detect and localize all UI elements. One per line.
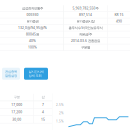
button[interactable]: 관심종목 알림설정 <box>2 68 20 80</box>
staticText: 80045원 <box>26 32 39 36</box>
staticText: 30,00 <box>12 117 21 122</box>
staticText: 4 <box>42 110 44 114</box>
staticText: 2014.03.6 전환완료 <box>71 38 100 43</box>
staticText: 구분 <box>14 95 20 99</box>
staticText: 관심종목 알림설정 <box>5 70 17 78</box>
staticText: 17,200 <box>11 110 22 114</box>
staticText: 2% <box>59 111 64 115</box>
staticText: 005930 <box>26 12 38 17</box>
staticText: 실시간시세 상세 조회 <box>28 70 43 78</box>
staticText: KR 15 <box>114 12 123 17</box>
staticText: 삼성전자보통주 <box>22 6 43 10</box>
staticText: 자본금/주 <box>79 32 92 36</box>
staticText: 7 <box>42 102 44 107</box>
staticText: 총주식수/외국인보유주식 <box>68 25 102 30</box>
staticText: 40% <box>29 38 36 43</box>
staticText: 100% <box>28 45 37 49</box>
staticText: 5,969,782,550주 <box>72 6 98 10</box>
staticText: 17,000 <box>11 102 22 107</box>
staticText: 유가증권 <box>26 19 38 23</box>
staticText: 구분별 <box>81 45 90 49</box>
staticText: 값 <box>41 95 44 99</box>
staticText: 490 <box>116 19 122 23</box>
staticText: 1.5% <box>56 119 64 123</box>
staticText: 15 <box>41 117 45 122</box>
button[interactable]: 실시간시세 상세 조회 <box>24 68 48 80</box>
staticText: 897,514 <box>79 12 92 17</box>
staticText: 유가증권시장 <box>76 19 94 23</box>
staticText: 132,0원/94,95원/% <box>18 25 47 30</box>
staticText: 2.5% <box>56 103 64 107</box>
